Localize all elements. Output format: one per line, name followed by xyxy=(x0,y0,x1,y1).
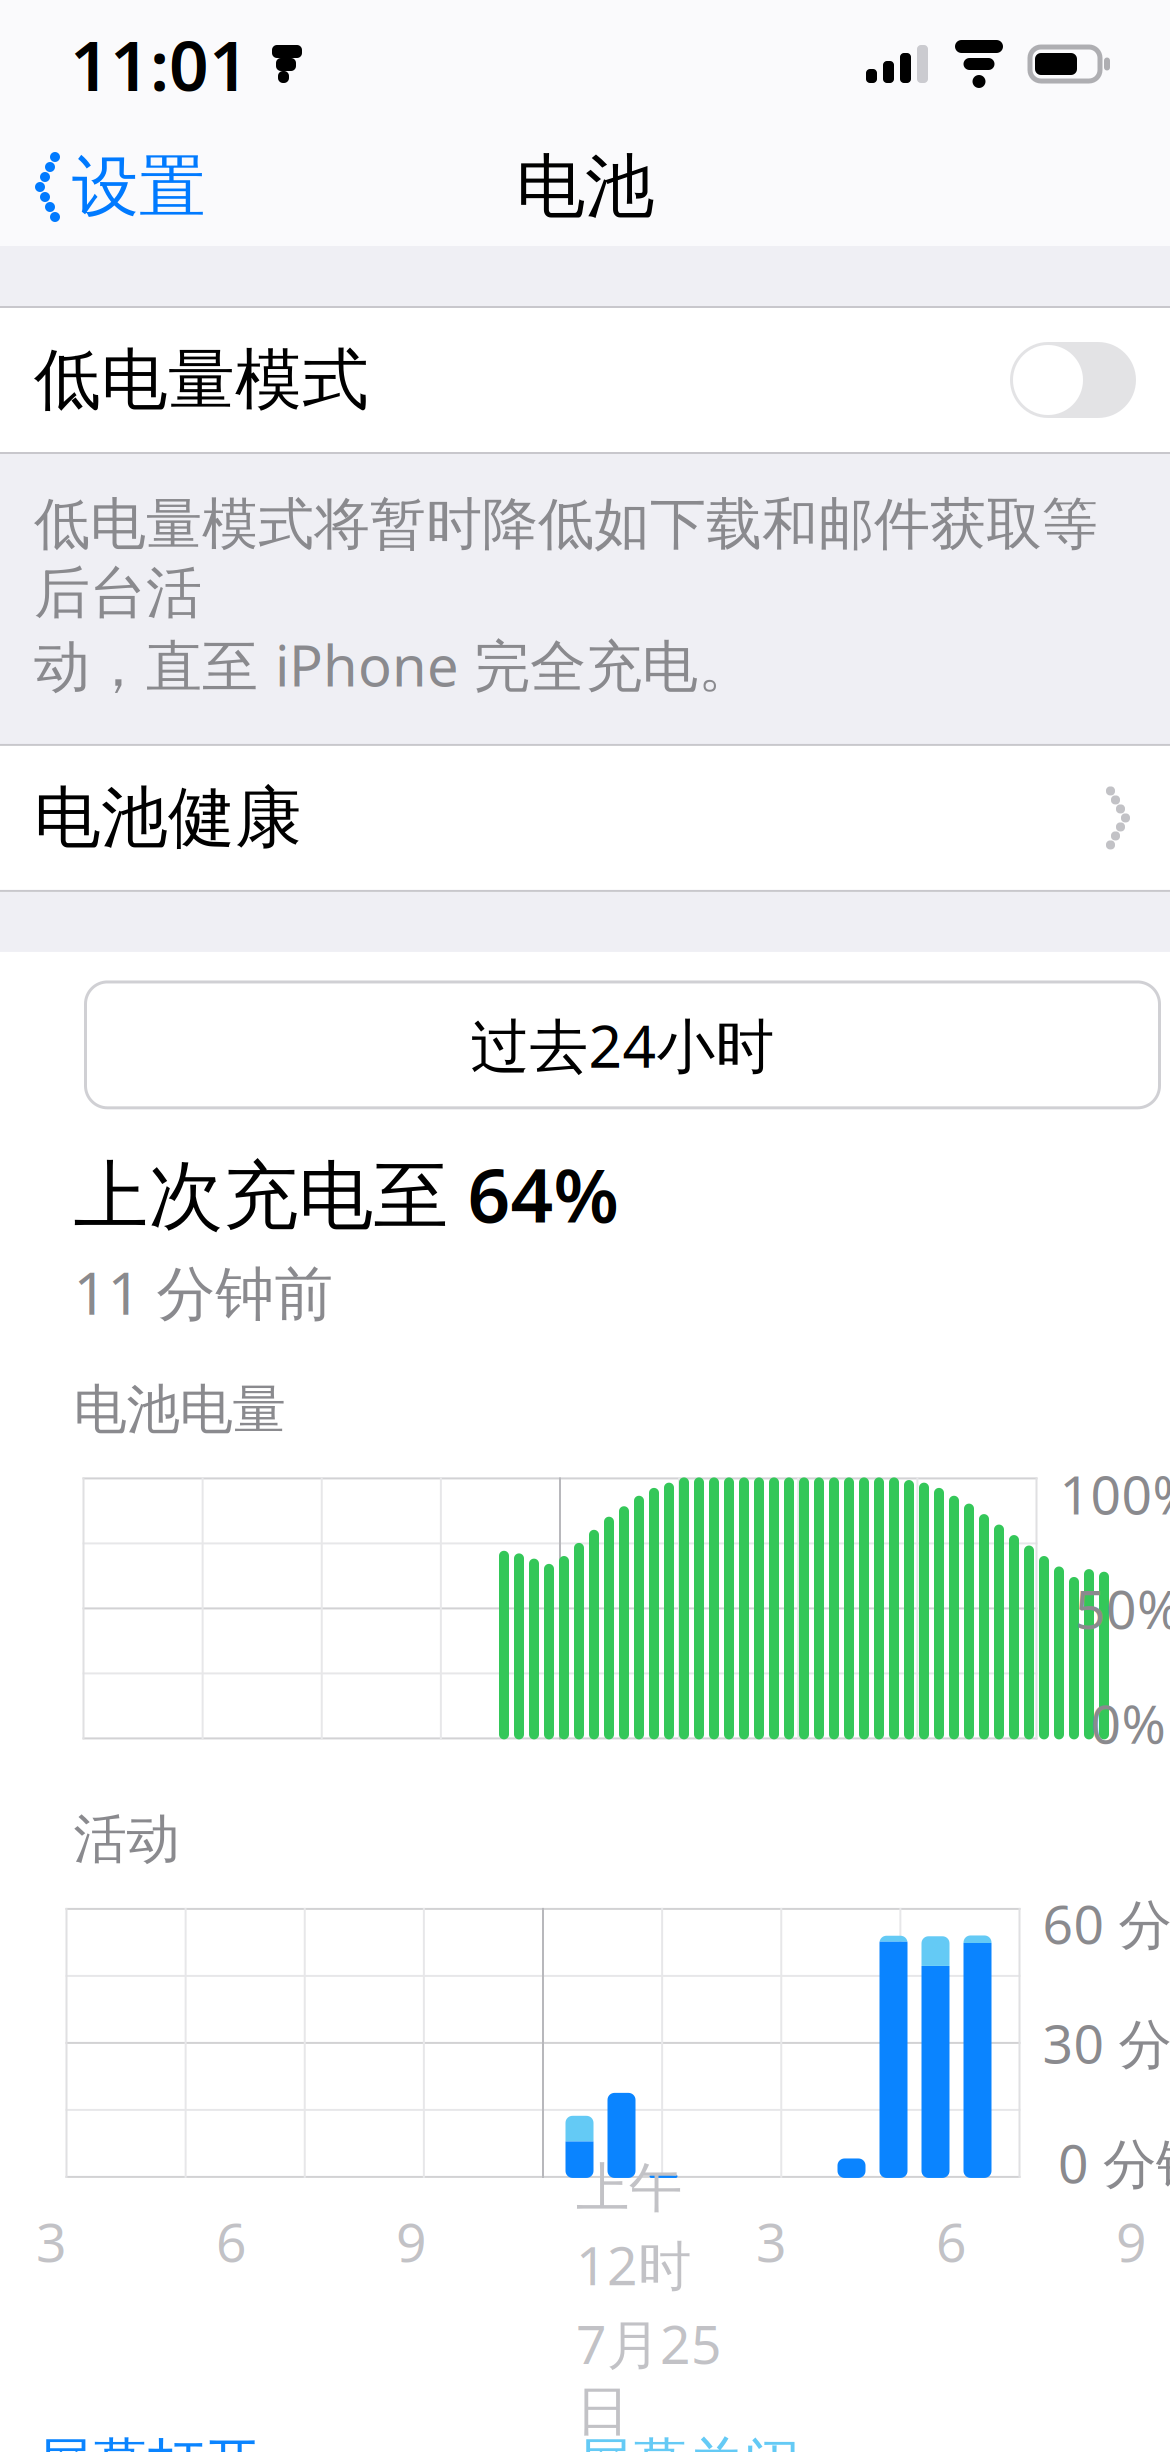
button[interactable]: 过去24小时 xyxy=(85,982,1159,1108)
staticText: 11:01 xyxy=(70,18,249,110)
staticText: 屏幕关闭 xyxy=(576,2430,800,2452)
staticText: 低电量模式 xyxy=(34,339,369,421)
staticText: 11 分钟前 xyxy=(73,1253,333,1331)
staticText: 0 分钟 xyxy=(1058,2127,1170,2198)
staticText: 50% xyxy=(1075,1573,1170,1644)
staticText: 活动 xyxy=(73,1806,179,1872)
staticText: 低电量模式将暂时降低如下载和邮件获取等后台活 动，直至 iPhone 完全充电。 xyxy=(34,490,1098,702)
staticText: 上次充电至 64% xyxy=(73,1144,618,1243)
staticText: 60 分钟 xyxy=(1042,1888,1170,1959)
button[interactable]: 电池健康 xyxy=(0,746,1170,890)
staticText: 电池健康 xyxy=(34,777,302,859)
staticText: 3 xyxy=(36,2206,67,2277)
staticText: 6 xyxy=(216,2206,247,2277)
staticText: 上午 xyxy=(576,2156,682,2221)
staticText: 12时 xyxy=(576,2229,691,2300)
staticText: 3 xyxy=(756,2206,787,2277)
staticText: 设置 xyxy=(72,146,206,228)
staticText: 9 xyxy=(396,2206,427,2277)
staticText: 0% xyxy=(1090,1688,1165,1758)
staticText: 7月25日 xyxy=(576,2308,722,2444)
staticText: 屏幕打开 xyxy=(36,2430,260,2452)
staticText: 100% xyxy=(1059,1458,1170,1529)
staticText: 6 xyxy=(936,2206,967,2277)
button[interactable]: 低电量模式 xyxy=(0,308,1170,452)
button[interactable]: 设置 xyxy=(0,130,206,244)
staticText: 过去24小时 xyxy=(470,1006,774,1084)
staticText: 电池电量 xyxy=(73,1377,285,1442)
staticText: 9 xyxy=(1116,2206,1147,2277)
staticText: 30 分钟 xyxy=(1042,2007,1170,2078)
staticText: 电池 xyxy=(516,144,654,230)
